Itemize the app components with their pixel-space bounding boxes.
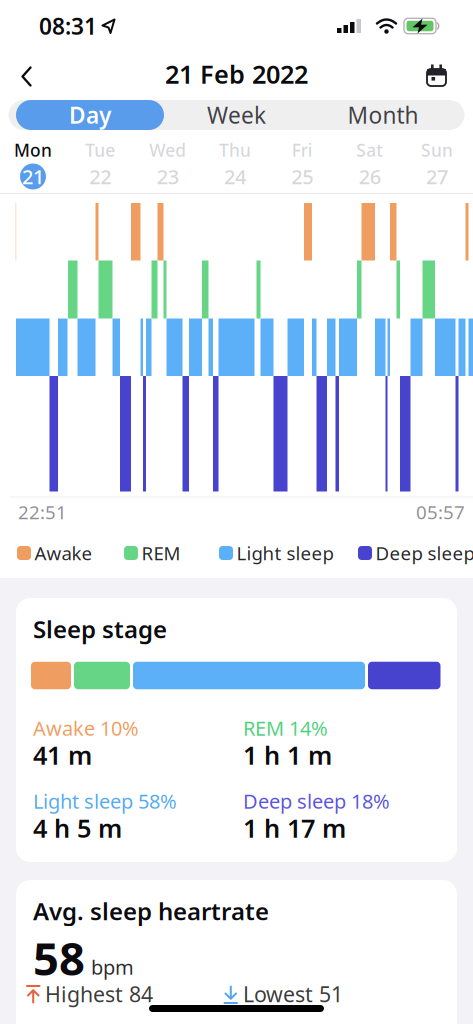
staticText: 24 [224, 163, 246, 190]
staticText: Light sleep [236, 541, 333, 565]
staticText: Sat [356, 138, 383, 161]
button[interactable]: Fri [289, 138, 315, 189]
staticText: 25 [291, 163, 313, 190]
staticText: Awake 10% [33, 715, 139, 741]
staticText: 21 Feb 2022 [165, 57, 308, 91]
button[interactable]: Mon [14, 138, 52, 189]
staticText: Tue [85, 138, 115, 161]
staticText: Mon [14, 138, 52, 161]
staticText: Deep sleep [375, 541, 473, 565]
staticText: Light sleep 58% [33, 788, 177, 814]
staticText: Sleep stage [33, 613, 167, 645]
button[interactable]: Sun [421, 138, 453, 189]
button[interactable]: Day [16, 100, 164, 130]
staticText: REM 14% [243, 715, 328, 741]
button[interactable]: Week [161, 100, 311, 130]
staticText: Lowest 51 [243, 980, 343, 1008]
staticText: 22 [89, 163, 111, 190]
staticText: 21 [22, 163, 44, 190]
staticText: Deep sleep 18% [243, 788, 390, 814]
staticText: 41 m [33, 738, 92, 772]
staticText: Highest 84 [45, 980, 153, 1008]
staticText: 08:31 [39, 11, 97, 41]
staticText: Week [207, 100, 266, 130]
staticText: Thu [219, 138, 251, 161]
button[interactable]: Month [308, 100, 458, 130]
staticText: Awake [34, 541, 92, 565]
staticText: 26 [359, 163, 381, 190]
staticText: 1 h 17 m [243, 811, 346, 845]
button[interactable]: Thu [219, 138, 251, 189]
staticText: Wed [149, 138, 186, 161]
staticText: 23 [157, 163, 179, 190]
staticText: Sun [421, 138, 453, 161]
staticText: REM [141, 541, 180, 565]
staticText: 4 h 5 m [33, 811, 122, 845]
button[interactable]: Tue [85, 138, 115, 189]
staticText: 05:57 [416, 500, 465, 524]
staticText: Month [347, 100, 418, 130]
staticText: Day [69, 100, 111, 130]
button[interactable]: Wed [149, 138, 186, 189]
staticText: 1 h 1 m [243, 738, 332, 772]
staticText: Avg. sleep heartrate [33, 895, 269, 927]
button[interactable]: Sat [356, 138, 383, 189]
staticText: 58 [33, 928, 85, 988]
staticText: bpm [91, 954, 134, 980]
button[interactable]: Calendar [414, 53, 458, 97]
staticText: 27 [426, 163, 448, 190]
staticText: 22:51 [18, 500, 67, 524]
staticText: Fri [292, 138, 313, 161]
button[interactable]: Back [4, 54, 48, 98]
